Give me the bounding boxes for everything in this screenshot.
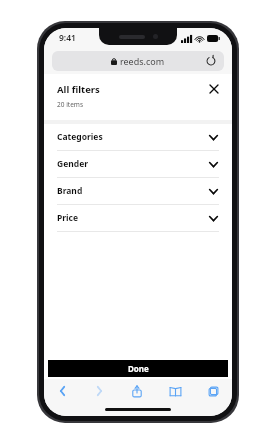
staticText: 9:41 (59, 32, 76, 44)
button[interactable]: Forward (81, 379, 118, 403)
staticText: All filters (57, 83, 100, 96)
button[interactable]: reeds.com (52, 51, 224, 71)
staticText: Categories (57, 131, 103, 143)
button[interactable]: Tabs (194, 379, 232, 403)
button[interactable]: Done (48, 360, 228, 377)
staticText: Price (57, 212, 79, 224)
staticText: 20 items (57, 100, 84, 109)
button[interactable]: Bookmarks (156, 379, 194, 403)
button[interactable]: Back (44, 379, 81, 403)
button[interactable]: Price (44, 205, 232, 231)
button[interactable]: Share (118, 379, 156, 403)
button[interactable]: Categories (44, 124, 232, 150)
button[interactable]: Brand (44, 178, 232, 204)
staticText: Gender (57, 158, 88, 170)
staticText: reeds.com (120, 55, 165, 67)
button[interactable]: Gender (44, 151, 232, 177)
staticText: Brand (57, 185, 83, 197)
button[interactable]: Close (206, 81, 222, 97)
staticText: Done (128, 363, 149, 374)
button[interactable]: Reload (204, 54, 218, 68)
